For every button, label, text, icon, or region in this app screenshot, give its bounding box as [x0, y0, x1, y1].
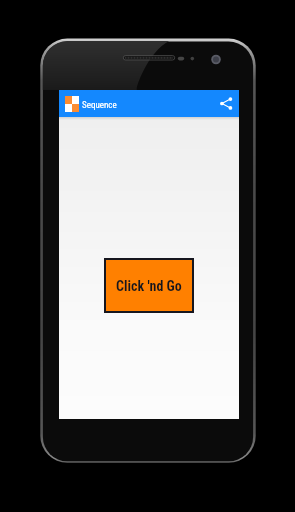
button[interactable]: Share — [213, 90, 239, 117]
staticText: Sequence — [82, 100, 117, 111]
button[interactable]: Click 'nd Go — [106, 260, 192, 311]
staticText: Click 'nd Go — [116, 278, 182, 294]
